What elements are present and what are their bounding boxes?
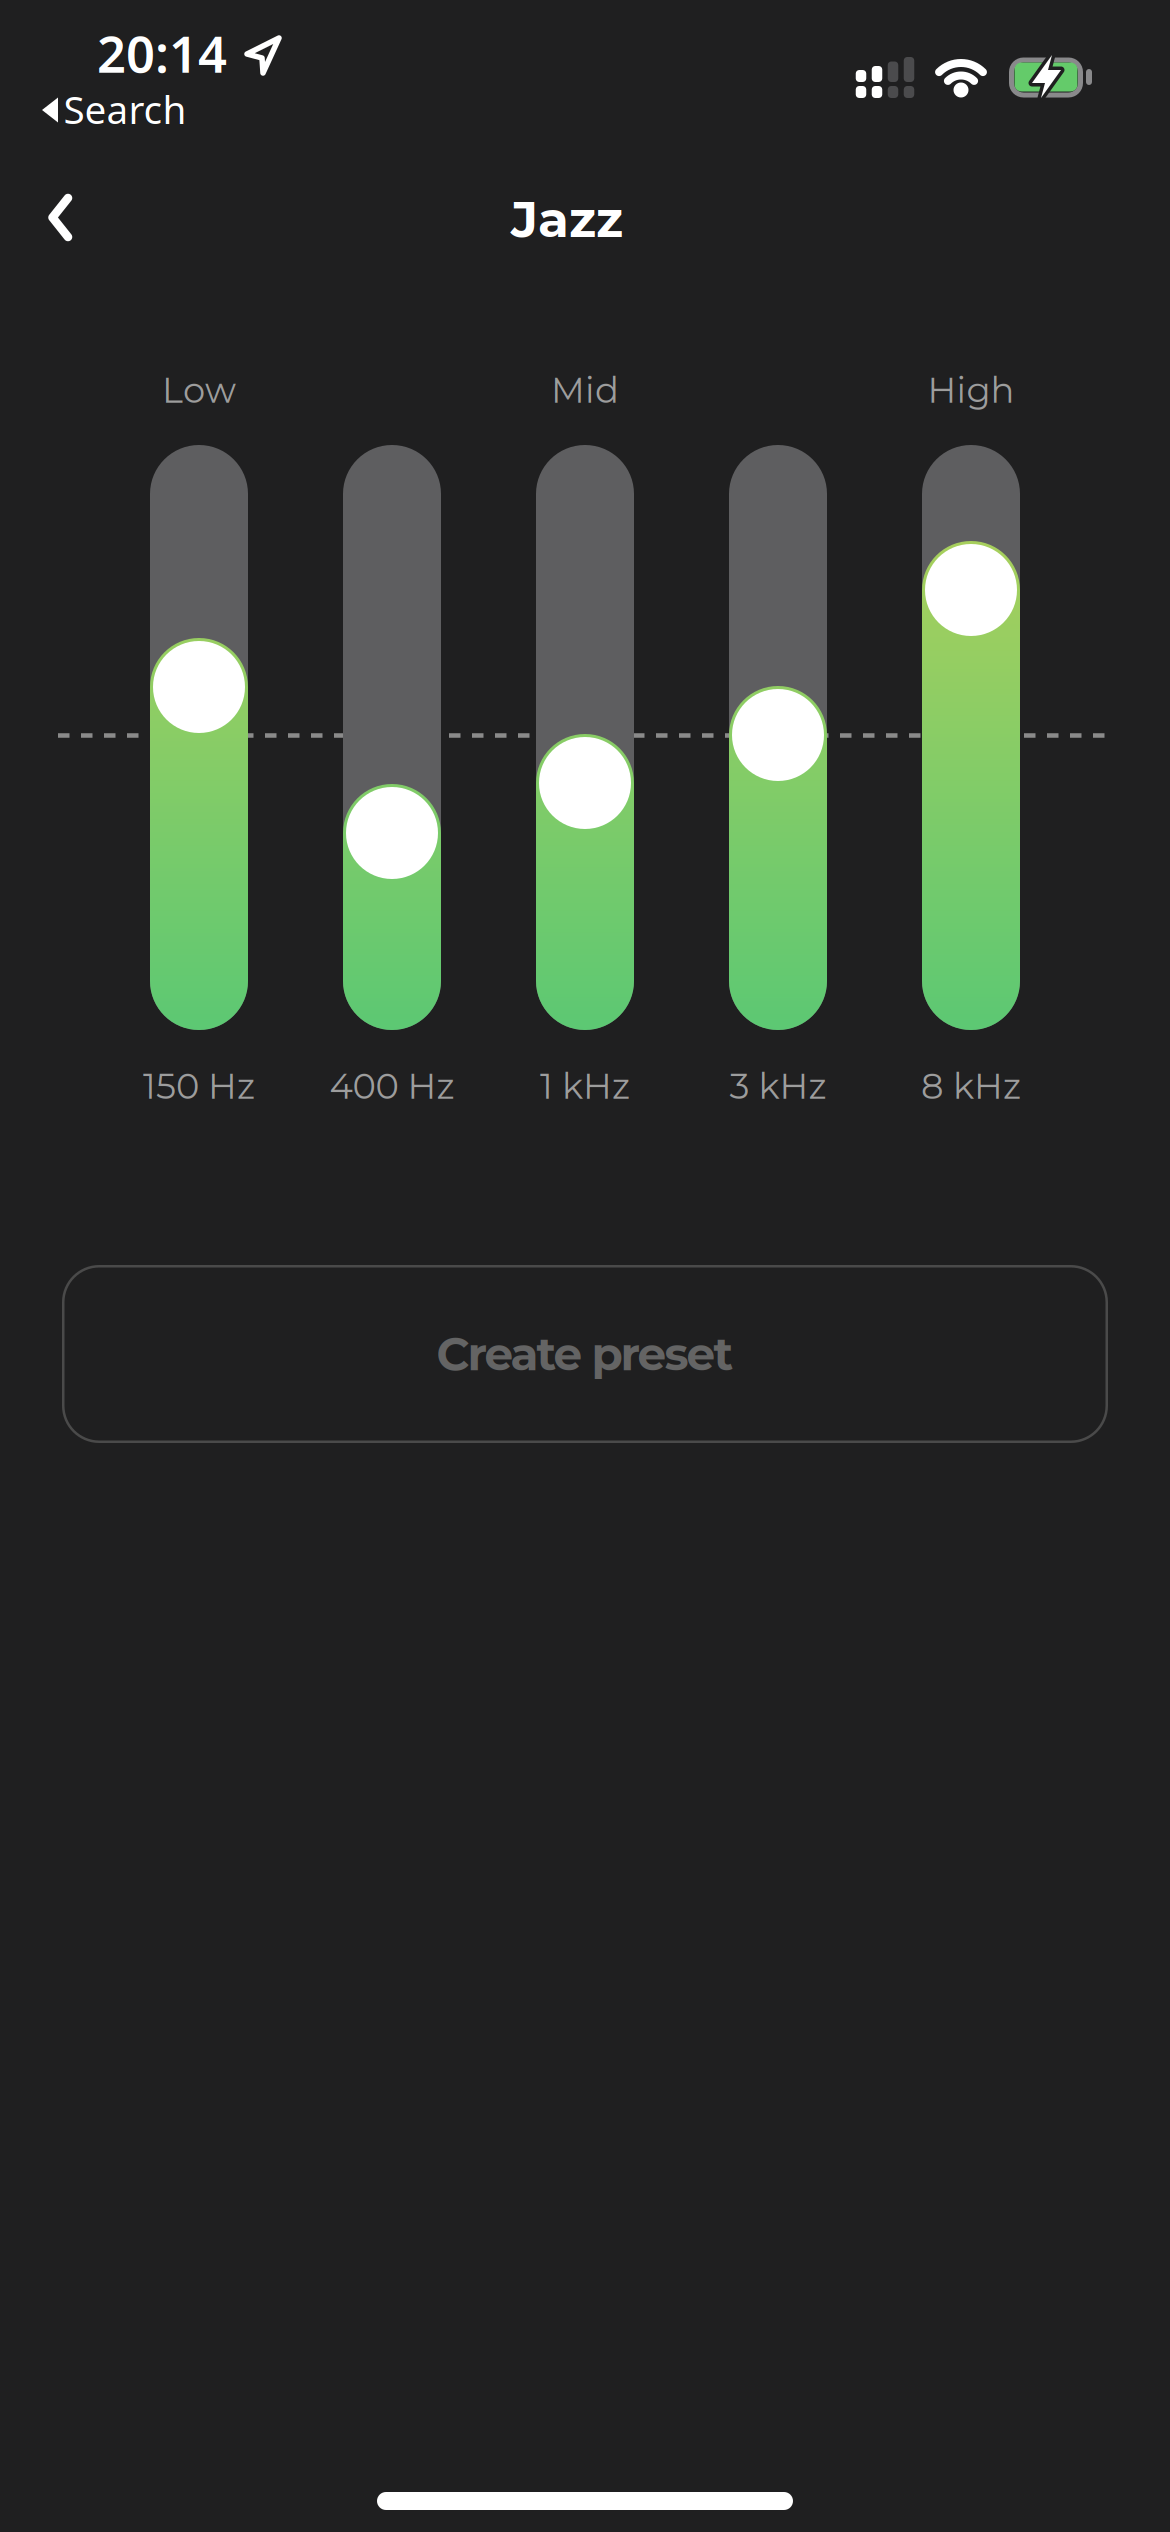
staticText: Jazz <box>511 188 623 249</box>
button[interactable]: Create preset <box>62 1265 1108 1443</box>
staticText: 8 kHz <box>921 1064 1021 1108</box>
button[interactable]: 150 Hz slider <box>150 445 248 1030</box>
button[interactable]: 3 kHz slider <box>729 445 827 1030</box>
button[interactable]: 1 kHz slider <box>536 445 634 1030</box>
staticText: High <box>927 368 1014 412</box>
staticText: 400 Hz <box>329 1064 454 1108</box>
button[interactable]: Back to Search <box>27 88 197 132</box>
staticText: 20:14 <box>97 19 227 87</box>
button[interactable]: 400 Hz slider <box>343 445 441 1030</box>
staticText: Create preset <box>436 1326 733 1382</box>
staticText: 3 kHz <box>729 1064 826 1108</box>
staticText: Low <box>162 368 236 412</box>
staticText: Search <box>63 83 186 135</box>
staticText: 150 Hz <box>143 1064 255 1108</box>
staticText: 1 kHz <box>540 1064 630 1108</box>
staticText: Mid <box>551 368 619 412</box>
button[interactable]: Back <box>16 173 104 261</box>
button[interactable]: 8 kHz slider <box>922 445 1020 1030</box>
